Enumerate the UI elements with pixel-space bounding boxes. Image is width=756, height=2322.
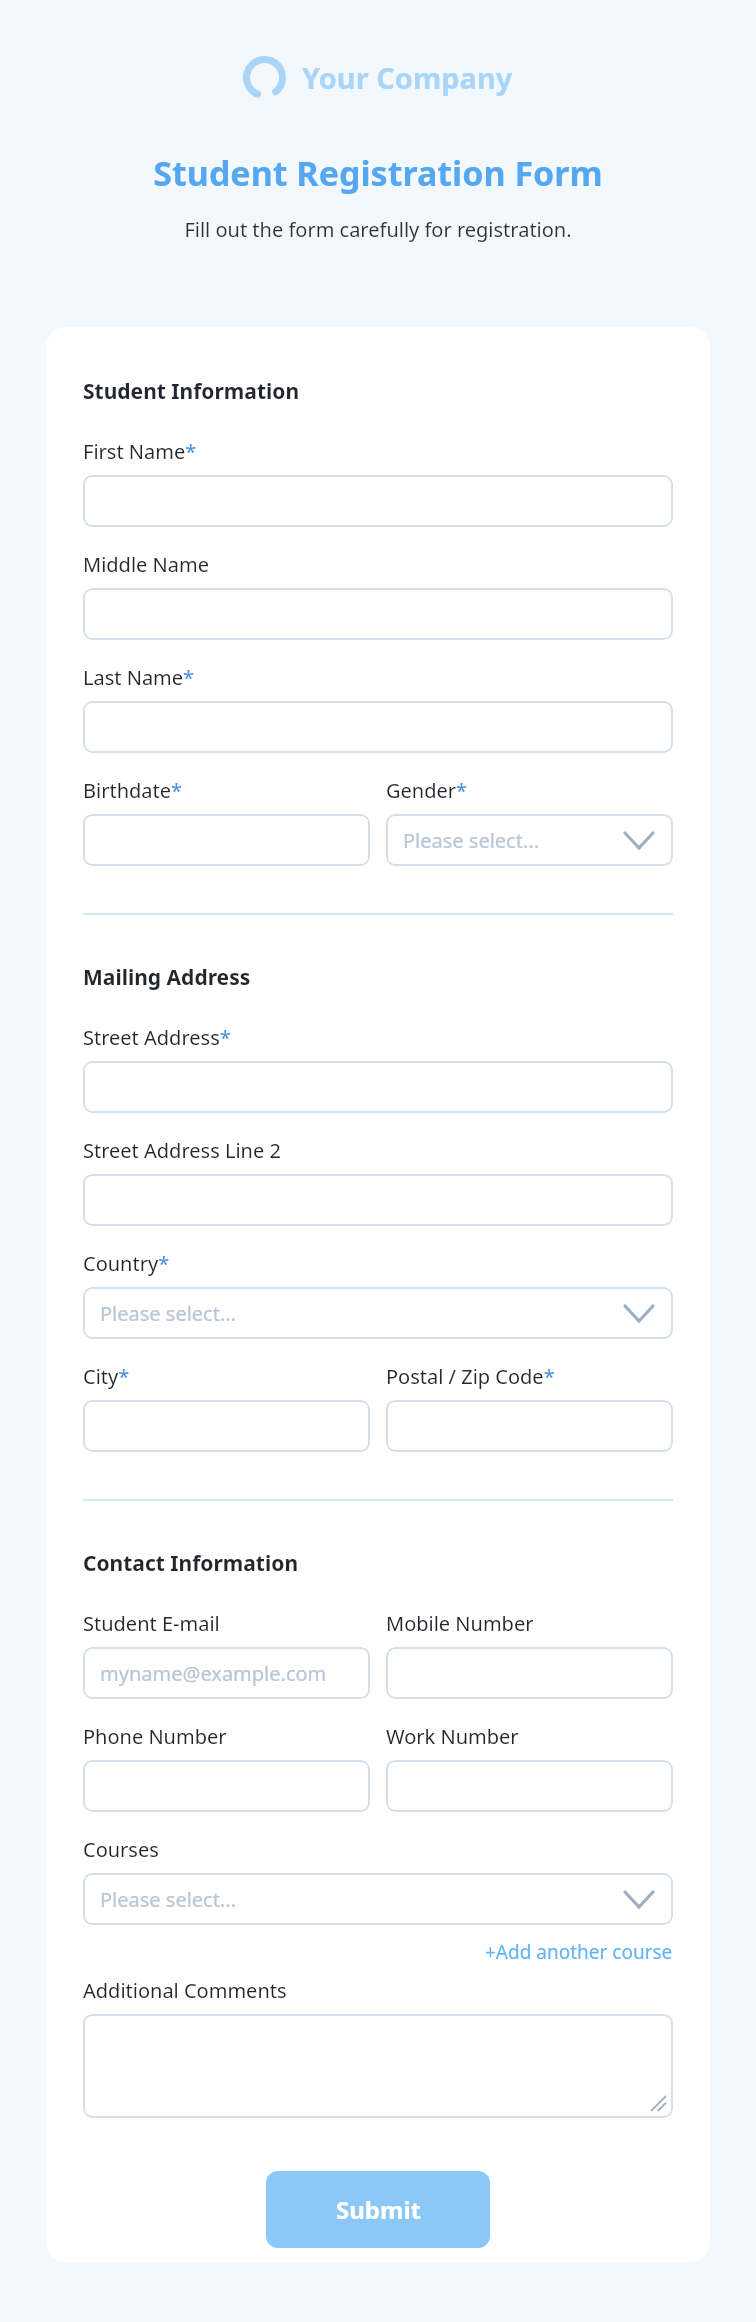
staticText: Street Address Line 2 bbox=[83, 1137, 281, 1164]
staticText: Street Address* bbox=[83, 1024, 231, 1051]
button[interactable]: Birthdate bbox=[83, 814, 370, 866]
staticText: Middle Name bbox=[83, 551, 209, 578]
staticText: Birthdate* bbox=[83, 777, 183, 804]
staticText: Mailing Address bbox=[83, 963, 251, 992]
staticText: Student Registration Form bbox=[0, 150, 756, 196]
button[interactable]: Submit bbox=[266, 2171, 490, 2248]
staticText: Mobile Number bbox=[386, 1610, 534, 1637]
staticText: Country* bbox=[83, 1250, 170, 1277]
staticText: +Add another course bbox=[485, 1939, 673, 1965]
staticText: Phone Number bbox=[83, 1723, 227, 1750]
staticText: Postal / Zip Code* bbox=[386, 1363, 555, 1390]
staticText: Please select... bbox=[403, 827, 540, 854]
staticText: Last Name* bbox=[83, 664, 195, 691]
button[interactable]: Additional Comments bbox=[83, 2014, 673, 2118]
button[interactable]: +Add another course bbox=[485, 1939, 673, 1965]
staticText: Contact Information bbox=[83, 1549, 299, 1578]
staticText: Gender* bbox=[386, 777, 468, 804]
staticText: Additional Comments bbox=[83, 1977, 287, 2004]
button[interactable]: Street Address Line 2 bbox=[83, 1174, 673, 1226]
button[interactable]: Last Name bbox=[83, 701, 673, 753]
button[interactable]: Mobile Number bbox=[386, 1647, 673, 1699]
staticText: Student Information bbox=[83, 377, 300, 406]
staticText: Your Company bbox=[302, 58, 513, 97]
staticText: First Name* bbox=[83, 438, 197, 465]
button[interactable]: Phone Number bbox=[83, 1760, 370, 1812]
button[interactable]: City bbox=[83, 1400, 370, 1452]
staticText: City* bbox=[83, 1363, 130, 1390]
button[interactable]: Gender bbox=[386, 814, 673, 866]
staticText: Please select... bbox=[100, 1886, 237, 1913]
staticText: Student E-mail bbox=[83, 1610, 220, 1637]
staticText: Courses bbox=[83, 1836, 159, 1863]
button[interactable]: Postal / Zip Code bbox=[386, 1400, 673, 1452]
staticText: myname@example.com bbox=[100, 1660, 327, 1687]
button[interactable]: Courses bbox=[83, 1873, 673, 1925]
staticText: Submit bbox=[336, 2193, 421, 2226]
staticText: Work Number bbox=[386, 1723, 519, 1750]
staticText: Fill out the form carefully for registra… bbox=[0, 216, 756, 243]
button[interactable]: First Name bbox=[83, 475, 673, 527]
button[interactable]: Middle Name bbox=[83, 588, 673, 640]
button[interactable]: Country bbox=[83, 1287, 673, 1339]
button[interactable]: Student E-mail bbox=[83, 1647, 370, 1699]
staticText: Please select... bbox=[100, 1300, 237, 1327]
button[interactable]: Street Address bbox=[83, 1061, 673, 1113]
button[interactable]: Work Number bbox=[386, 1760, 673, 1812]
